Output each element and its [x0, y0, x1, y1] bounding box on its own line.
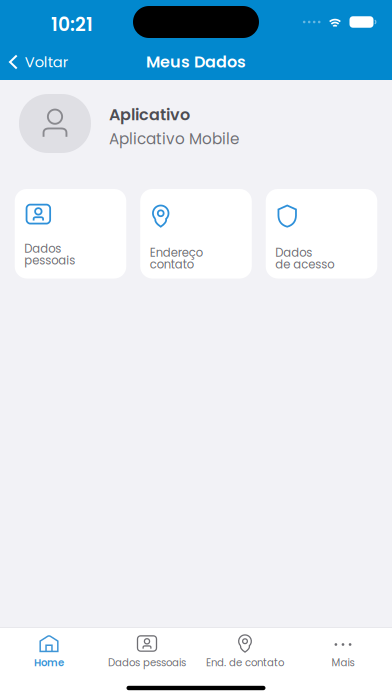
staticText: Dados — [275, 245, 312, 261]
staticText: Dados pessoais — [108, 655, 186, 670]
staticText: Dados — [24, 241, 61, 257]
button[interactable]: Dados — [266, 189, 377, 278]
button[interactable]: Home — [0, 628, 98, 672]
button[interactable]: Endereço — [140, 189, 252, 278]
button[interactable]: Dados pessoais — [98, 628, 196, 672]
staticText: Aplicativo — [109, 103, 190, 126]
staticText: Aplicativo Mobile — [109, 128, 239, 150]
button[interactable]: Voltar — [0, 45, 78, 79]
staticText: de acesso — [275, 256, 334, 272]
staticText: Meus Dados — [146, 51, 246, 73]
staticText: contato — [150, 256, 194, 272]
staticText: 10:21 — [51, 11, 93, 37]
staticText: Mais — [331, 655, 354, 670]
staticText: Endereço — [150, 245, 203, 261]
staticText: End. de contato — [206, 655, 284, 670]
staticText: pessoais — [24, 252, 75, 268]
staticText: Home — [34, 655, 64, 670]
staticText: Voltar — [25, 52, 68, 72]
button[interactable]: Dados — [15, 189, 126, 278]
button[interactable]: End. de contato — [196, 628, 294, 672]
button[interactable]: Mais — [294, 628, 392, 672]
